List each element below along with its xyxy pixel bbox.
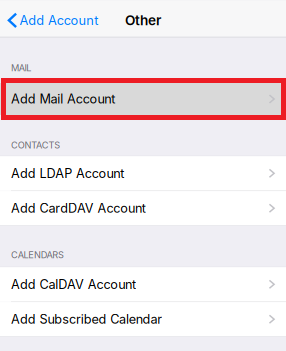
staticText: CALENDARS bbox=[11, 249, 64, 260]
button[interactable]: Add LDAP Account bbox=[0, 156, 286, 190]
staticText: Add CalDAV Account bbox=[11, 277, 136, 292]
staticText: Add CardDAV Account bbox=[11, 200, 146, 216]
button[interactable]: Add Mail Account bbox=[0, 83, 286, 115]
staticText: Other bbox=[125, 12, 161, 29]
staticText: Add LDAP Account bbox=[11, 166, 124, 181]
button[interactable]: Add Account bbox=[0, 2, 104, 39]
staticText: Add Account bbox=[19, 13, 98, 28]
button[interactable]: Add CardDAV Account bbox=[0, 191, 286, 225]
staticText: Add Subscribed Calendar bbox=[11, 311, 162, 327]
staticText: CONTACTS bbox=[11, 139, 60, 151]
staticText: MAIL bbox=[11, 62, 31, 73]
staticText: Add Mail Account bbox=[11, 91, 115, 107]
button[interactable]: Add Subscribed Calendar bbox=[0, 302, 286, 336]
button[interactable]: Add CalDAV Account bbox=[0, 267, 286, 301]
